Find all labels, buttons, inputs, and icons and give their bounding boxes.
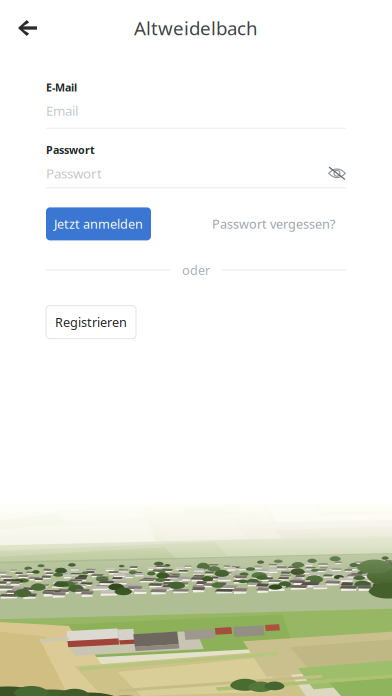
staticText: Email	[46, 101, 78, 120]
staticText: Altweidelbach	[134, 15, 258, 41]
button[interactable]: Back	[0, 6, 55, 50]
button[interactable]: Show password	[328, 166, 346, 180]
staticText: Passwort vergessen?	[212, 215, 335, 232]
button[interactable]: Registrieren	[46, 306, 136, 339]
staticText: E-Mail	[46, 80, 77, 94]
staticText: Passwort	[46, 164, 102, 182]
staticText: Registrieren	[55, 313, 127, 331]
staticText: oder	[182, 261, 210, 279]
staticText: Jetzt anmelden	[54, 215, 143, 232]
staticText: Passwort	[46, 143, 95, 157]
button[interactable]: Jetzt anmelden	[46, 207, 151, 240]
button[interactable]: Passwort vergessen?	[212, 215, 346, 232]
